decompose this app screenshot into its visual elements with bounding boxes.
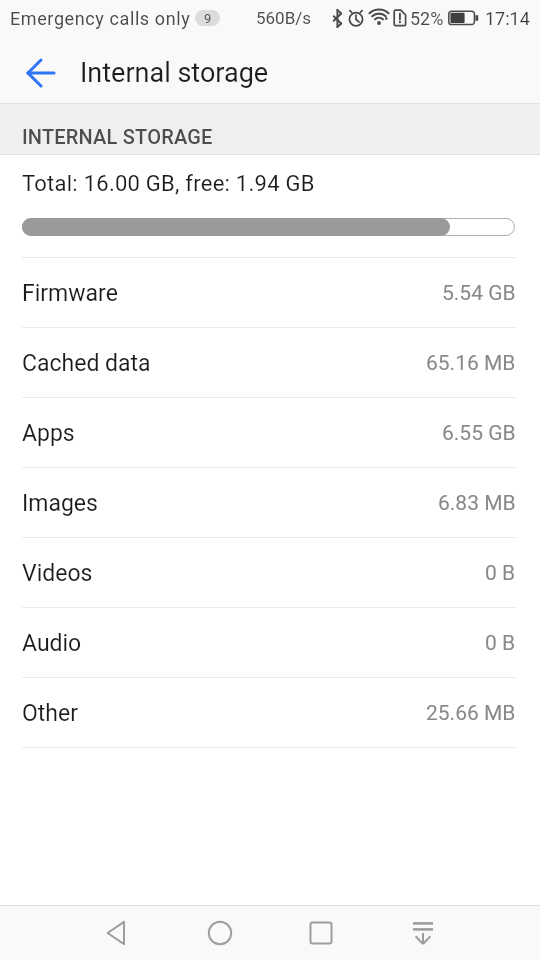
staticText: Total: 16.00 GB, free: 1.94 GB: [22, 171, 315, 197]
staticText: 9: [204, 11, 212, 26]
button[interactable]: Audio: [0, 608, 540, 678]
staticText: Images: [22, 490, 98, 517]
button[interactable]: Other: [0, 678, 540, 748]
staticText: INTERNAL STORAGE: [22, 125, 213, 148]
staticText: Other: [22, 700, 79, 727]
staticText: 17:14: [485, 8, 530, 29]
staticText: 560B/s: [256, 8, 312, 28]
button[interactable]: Images: [0, 468, 540, 538]
button[interactable]: Videos: [0, 538, 540, 608]
staticText: Cached data: [22, 350, 151, 377]
button[interactable]: Apps: [0, 398, 540, 468]
staticText: Apps: [22, 420, 75, 447]
button[interactable]: Cached data: [0, 328, 540, 398]
button[interactable]: [193, 905, 247, 960]
staticText: 65.16 MB: [426, 351, 516, 376]
staticText: 6.83 MB: [438, 491, 516, 516]
staticText: 0 B: [485, 631, 516, 656]
button[interactable]: [294, 905, 348, 960]
button[interactable]: [396, 905, 450, 960]
staticText: 25.66 MB: [426, 701, 516, 726]
staticText: Audio: [22, 630, 82, 657]
staticText: Emergency calls only: [10, 8, 191, 29]
button[interactable]: [0, 36, 70, 103]
staticText: Internal storage: [80, 57, 269, 89]
staticText: 6.55 GB: [442, 421, 516, 446]
button[interactable]: [90, 905, 144, 960]
staticText: Firmware: [22, 280, 118, 307]
staticText: 5.54 GB: [442, 281, 516, 306]
staticText: 0 B: [485, 561, 516, 586]
staticText: Videos: [22, 560, 93, 587]
button[interactable]: Firmware: [0, 258, 540, 328]
staticText: 52%: [410, 8, 444, 29]
